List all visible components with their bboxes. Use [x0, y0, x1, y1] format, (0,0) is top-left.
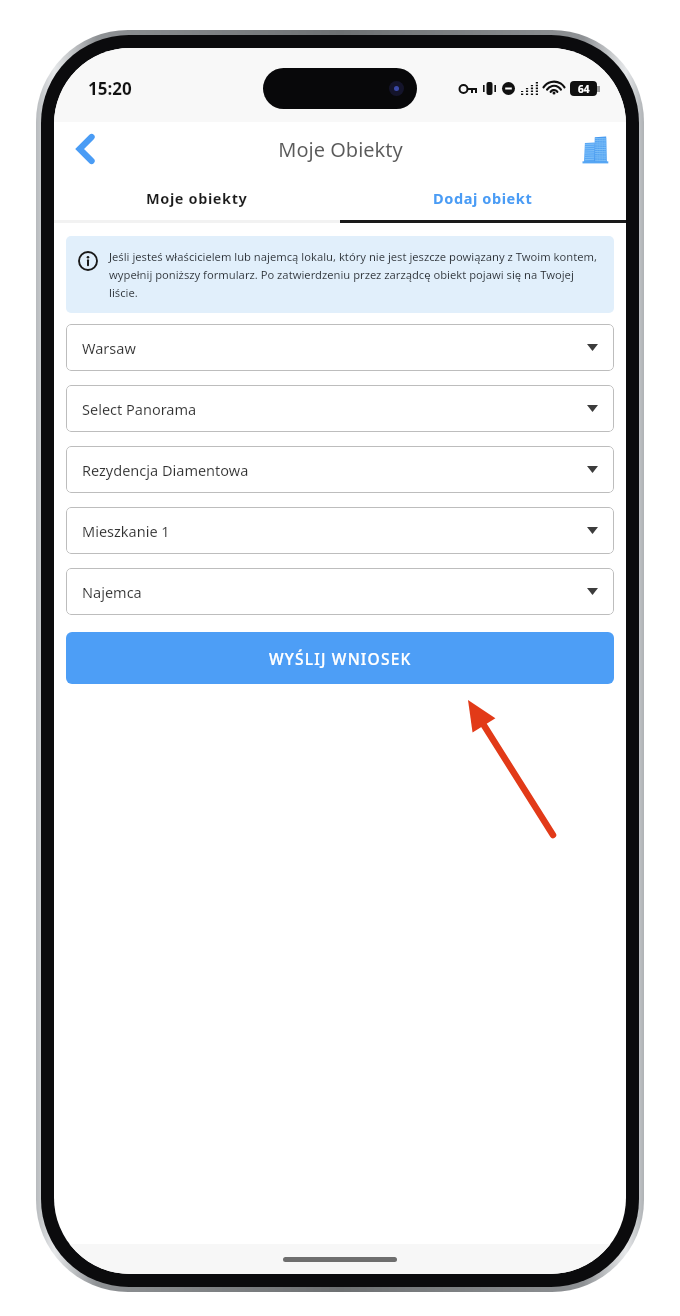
staticText: 15:20	[88, 77, 132, 100]
staticText: Dodaj obiekt	[433, 188, 533, 208]
button[interactable]: Back	[62, 125, 110, 173]
staticText: Select Panorama	[82, 399, 587, 419]
button[interactable]: Warsaw	[66, 324, 614, 371]
staticText: Jeśli jesteś właścicielem lub najemcą lo…	[109, 249, 600, 300]
staticText: 64	[578, 82, 590, 96]
button[interactable]: Moje obiekty	[54, 176, 340, 220]
staticText: Najemca	[82, 582, 587, 602]
staticText: Moje obiekty	[146, 188, 248, 208]
button[interactable]: Dodaj obiekt	[340, 176, 626, 220]
button[interactable]: WYŚLIJ WNIOSEK	[66, 632, 614, 684]
staticText: Moje Obiekty	[278, 136, 403, 163]
button[interactable]: Najemca	[66, 568, 614, 615]
button[interactable]: Mieszkanie 1	[66, 507, 614, 554]
button[interactable]: Select Panorama	[66, 385, 614, 432]
staticText: Rezydencja Diamentowa	[82, 460, 587, 480]
staticText: Mieszkanie 1	[82, 521, 587, 541]
staticText: Warsaw	[82, 338, 587, 358]
button[interactable]: Rezydencja Diamentowa	[66, 446, 614, 493]
staticText: WYŚLIJ WNIOSEK	[269, 648, 412, 669]
button[interactable]: Buildings	[574, 127, 618, 171]
